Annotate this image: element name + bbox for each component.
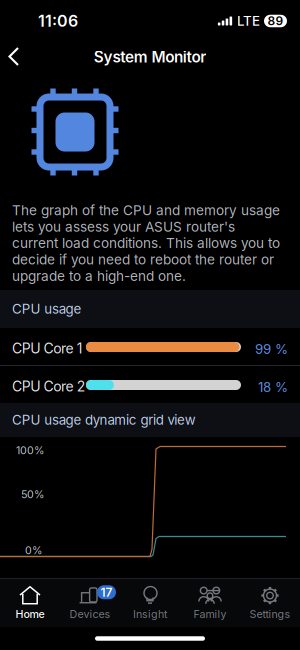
staticText: LTE bbox=[237, 13, 260, 29]
staticText: 99 % bbox=[255, 341, 288, 357]
button[interactable]: Settings bbox=[240, 579, 300, 627]
staticText: CPU Core 2 bbox=[12, 378, 86, 395]
staticText: Insight bbox=[133, 607, 167, 620]
staticText: Devices bbox=[69, 607, 110, 620]
staticText: 17 bbox=[100, 585, 112, 599]
button[interactable]: Devices bbox=[60, 579, 120, 627]
staticText: 89 bbox=[267, 14, 283, 28]
staticText: The graph of the CPU and memory usage le… bbox=[12, 202, 280, 284]
button[interactable]: Home bbox=[0, 579, 60, 627]
staticText: 50% bbox=[21, 488, 44, 501]
staticText: Home bbox=[15, 607, 44, 620]
staticText: System Monitor bbox=[94, 48, 206, 66]
staticText: CPU usage bbox=[12, 301, 81, 317]
button[interactable]: Back bbox=[0, 36, 40, 76]
staticText: 100% bbox=[16, 444, 44, 457]
staticText: Family bbox=[193, 607, 226, 620]
staticText: 11:06 bbox=[38, 11, 78, 31]
staticText: CPU Core 1 bbox=[12, 340, 83, 357]
staticText: 0% bbox=[25, 544, 42, 557]
staticText: Settings bbox=[249, 607, 290, 620]
button[interactable]: Family bbox=[180, 579, 240, 627]
staticText: 18 % bbox=[258, 379, 288, 395]
button[interactable]: Insight bbox=[120, 579, 180, 627]
staticText: CPU usage dynamic grid view bbox=[12, 412, 196, 428]
